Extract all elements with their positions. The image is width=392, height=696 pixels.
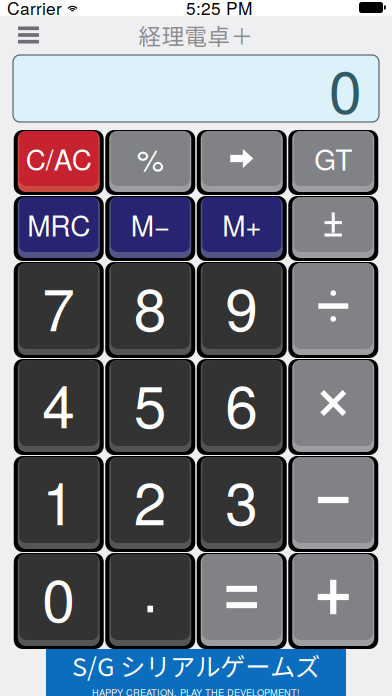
- staticText: 1: [42, 458, 75, 542]
- button[interactable]: Decimal point: [105, 553, 195, 649]
- staticText: 0: [329, 46, 362, 130]
- staticText: 4: [42, 361, 75, 445]
- button[interactable]: 7: [14, 262, 104, 358]
- staticText: S/G シリアルゲームズ: [72, 647, 320, 684]
- button[interactable]: C/AC: [14, 130, 104, 195]
- button[interactable]: Divide: [288, 262, 378, 358]
- staticText: 2: [134, 458, 167, 542]
- button[interactable]: %: [105, 130, 195, 195]
- staticText: 7: [42, 264, 75, 348]
- button[interactable]: M−: [105, 196, 195, 261]
- button[interactable]: 3: [197, 456, 287, 552]
- button[interactable]: Plus minus: [288, 196, 378, 261]
- button[interactable]: S/G シリアルゲームズ: [46, 649, 346, 696]
- button[interactable]: Equals: [197, 553, 287, 649]
- staticText: 6: [225, 361, 258, 445]
- staticText: 経理電卓＋: [138, 19, 253, 51]
- staticText: 3: [225, 458, 258, 542]
- staticText: %: [137, 136, 164, 180]
- button[interactable]: MRC: [14, 196, 104, 261]
- button[interactable]: 9: [197, 262, 287, 358]
- staticText: 9: [225, 264, 258, 348]
- staticText: Carrier: [7, 0, 62, 20]
- button[interactable]: Right: [197, 130, 287, 195]
- staticText: MRC: [27, 204, 90, 245]
- staticText: HAPPY CREATION, PLAY THE DEVELOPMENT!: [92, 686, 300, 696]
- staticText: 5:25 PM: [186, 0, 252, 20]
- button[interactable]: Plus: [288, 553, 378, 649]
- staticText: 5: [134, 361, 167, 445]
- staticText: GT: [314, 138, 352, 179]
- button[interactable]: 2: [105, 456, 195, 552]
- button[interactable]: 4: [14, 359, 104, 455]
- button[interactable]: 6: [197, 359, 287, 455]
- button[interactable]: GT: [288, 130, 378, 195]
- button[interactable]: Minus: [288, 456, 378, 552]
- button[interactable]: Multiply: [288, 359, 378, 455]
- staticText: M+: [222, 204, 261, 245]
- button[interactable]: M+: [197, 196, 287, 261]
- button[interactable]: 5: [105, 359, 195, 455]
- staticText: 8: [134, 264, 167, 348]
- staticText: C/AC: [26, 138, 92, 179]
- staticText: 0: [42, 555, 75, 639]
- button[interactable]: 8: [105, 262, 195, 358]
- button[interactable]: 0: [14, 553, 104, 649]
- staticText: M−: [131, 204, 170, 245]
- button[interactable]: Menu: [0, 17, 53, 52]
- button[interactable]: 1: [14, 456, 104, 552]
